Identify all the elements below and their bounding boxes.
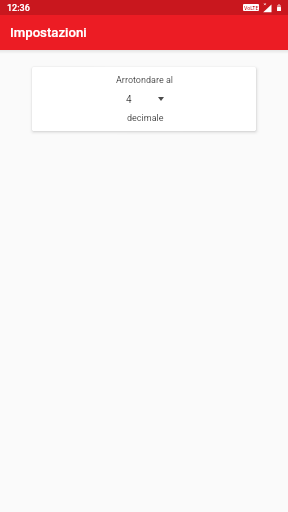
staticText: decimale [127, 113, 164, 124]
staticText: Arrotondare al [116, 75, 174, 86]
staticText: Impostazioni [10, 25, 87, 40]
staticText: VoLTE [244, 5, 259, 11]
button[interactable]: Arrotondare al 4 decimale [115, 94, 175, 105]
button[interactable]: Arrotondare al [32, 67, 256, 131]
staticText: 12:36 [7, 3, 30, 14]
staticText: 4 [126, 94, 132, 105]
